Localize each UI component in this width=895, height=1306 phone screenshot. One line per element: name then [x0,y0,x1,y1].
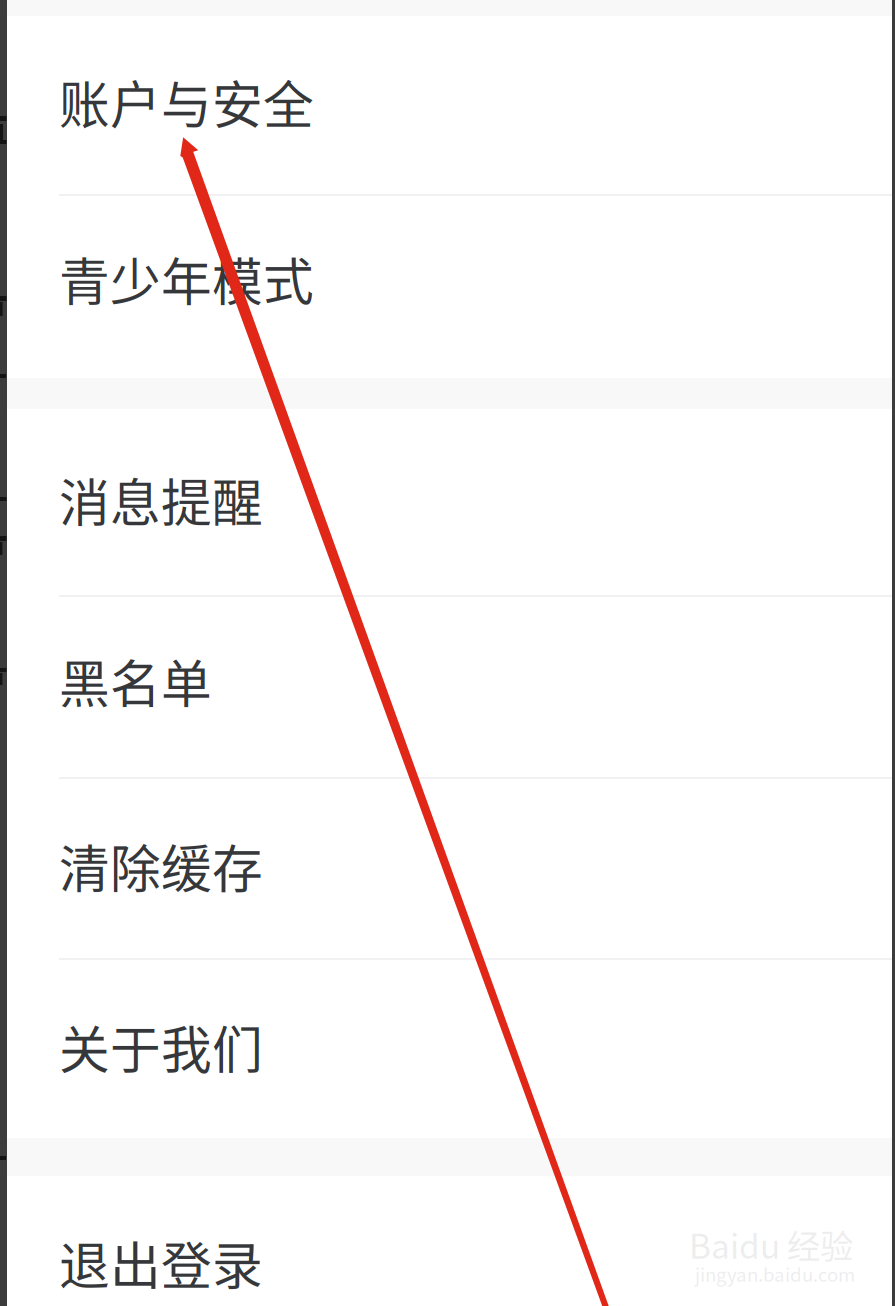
staticText: jingyan.baidu.com [695,1260,855,1287]
button[interactable]: 退出登录 [0,1176,895,1306]
button[interactable]: 账户与安全 [0,16,895,196]
staticText: 清除缓存 [59,829,263,902]
button[interactable]: 青少年模式 [0,196,895,378]
button[interactable]: 关于我们 [0,960,895,1138]
button[interactable]: 消息提醒 [0,409,895,597]
staticText: 退出登录 [59,1226,263,1299]
staticText: 黑名单 [59,644,212,717]
staticText: Baidu 经验 [689,1220,853,1268]
staticText: 关于我们 [59,1010,263,1083]
staticText: 账户与安全 [59,65,314,138]
staticText: 消息提醒 [59,463,263,536]
staticText: 青少年模式 [59,242,314,315]
button[interactable]: 清除缓存 [0,779,895,960]
button[interactable]: 黑名单 [0,597,895,779]
